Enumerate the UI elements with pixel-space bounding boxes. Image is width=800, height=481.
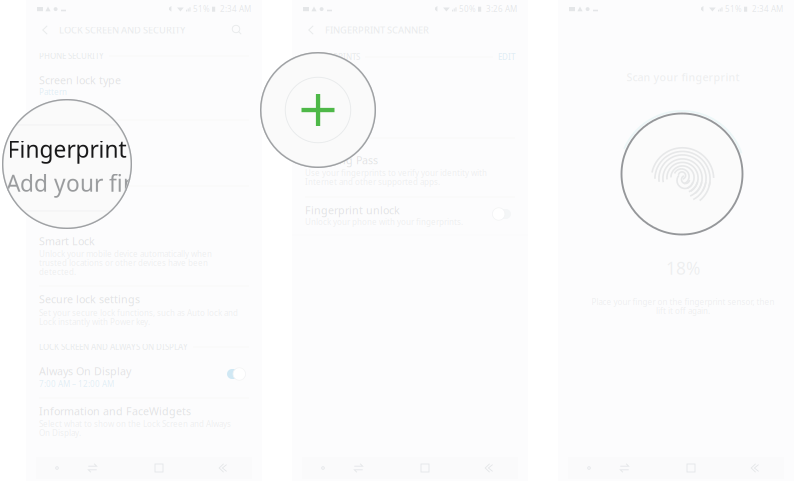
button[interactable]: Secure lock settings: [26, 293, 262, 305]
staticText: lift it off again.: [656, 306, 710, 316]
staticText: On Display.: [39, 428, 81, 438]
button[interactable]: Home: [146, 457, 172, 479]
staticText: 2:34 AM: [220, 4, 251, 14]
staticText: 2:34 AM: [752, 4, 783, 14]
staticText: Samsung Pass: [305, 153, 378, 167]
staticText: Use your fingerprints to verify your ide…: [305, 168, 487, 178]
staticText: Secure lock settings: [39, 292, 140, 306]
staticText: 18%: [666, 256, 700, 279]
button[interactable]: Smart Lock: [26, 235, 262, 247]
staticText: Fingerprint 1: [305, 102, 372, 116]
button[interactable]: Samsung Pass: [292, 154, 528, 166]
staticText: Information and FaceWidgets: [39, 404, 191, 418]
button[interactable]: Home: [678, 457, 704, 479]
staticText: Lock instantly with Power key.: [39, 317, 150, 327]
staticText: Internet and other supported apps.: [305, 177, 440, 187]
staticText: 50%: [459, 4, 476, 14]
button[interactable]: Back: [209, 457, 235, 479]
staticText: Select what to show on the Lock Screen a…: [39, 419, 231, 429]
staticText: Add your fingerprint: [39, 153, 116, 163]
button[interactable]: Back: [475, 457, 501, 479]
staticText: EDIT: [498, 52, 515, 62]
staticText: Pattern: [39, 87, 67, 97]
button[interactable]: Toggle on: [226, 367, 245, 381]
button[interactable]: Search: [226, 19, 248, 41]
button[interactable]: Always On Display: [26, 365, 262, 377]
staticText: 7:00 AM – 12:00 AM: [39, 379, 114, 389]
button[interactable]: Fingerprint unlock: [292, 204, 528, 216]
button[interactable]: Recents: [345, 457, 371, 479]
staticText: LOCK SCREEN AND SECURITY: [59, 24, 185, 36]
staticText: detected.: [39, 267, 76, 277]
staticText: 51%: [725, 4, 742, 14]
button[interactable]: Information and FaceWidgets: [26, 405, 262, 417]
staticText: Fingerprint unlock: [305, 203, 400, 217]
button[interactable]: Home: [412, 457, 438, 479]
staticText: FINGERPRINT SCANNER: [325, 24, 429, 36]
button[interactable]: Fingerprint 1: [292, 103, 528, 115]
staticText: FINGERPRINTS: [305, 52, 360, 62]
staticText: PHONE SECURITY: [39, 51, 104, 61]
staticText: trusted locations or other devices have …: [39, 258, 208, 268]
staticText: VERIFICATION: [305, 133, 358, 143]
staticText: Place your finger on the fingerprint sen…: [591, 297, 774, 307]
button[interactable]: Recents: [79, 457, 105, 479]
staticText: Set your secure lock functions, such as …: [39, 308, 238, 318]
staticText: Always On Display: [39, 364, 131, 378]
staticText: LOCK SCREEN AND ALWAYS ON DISPLAY: [39, 342, 188, 352]
button[interactable]: Fingerprint: [26, 140, 262, 152]
button[interactable]: EDIT: [498, 52, 515, 62]
button[interactable]: Screen lock type: [26, 74, 262, 86]
staticText: Scan your fingerprint: [626, 70, 739, 84]
staticText: 51%: [193, 4, 210, 14]
staticText: Smart Lock: [39, 234, 95, 248]
staticText: Add your finge: [6, 168, 164, 198]
staticText: Unlock your mobile device automatically …: [39, 249, 212, 259]
staticText: Unlock your phone with your fingerprints…: [305, 217, 463, 227]
button[interactable]: Toggle off: [492, 207, 511, 221]
staticText: Screen lock type: [39, 73, 121, 87]
button[interactable]: Recents: [611, 457, 637, 479]
staticText: Fingerprint: [7, 134, 126, 164]
staticText: Fingerprint: [39, 139, 97, 153]
staticText: 3:26 AM: [486, 4, 517, 14]
button[interactable]: Back: [741, 457, 767, 479]
